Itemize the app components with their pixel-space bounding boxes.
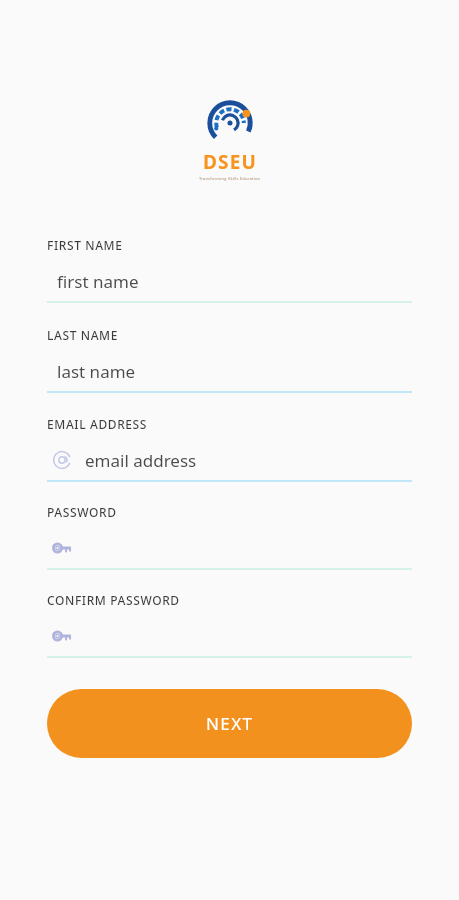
button[interactable]: PASSWORD [47,504,412,570]
button[interactable]: LAST NAME [47,327,412,393]
button[interactable]: EMAIL ADDRESS [47,416,412,482]
button[interactable]: NEXT [47,689,412,758]
staticText: LAST NAME [47,327,119,343]
button[interactable]: FIRST NAME [47,237,412,303]
staticText: DSEU [203,149,258,175]
other: Password [52,537,74,559]
staticText: NEXT [206,712,254,735]
staticText: EMAIL ADDRESS [47,416,148,432]
staticText: FIRST NAME [47,237,123,253]
button[interactable]: CONFIRM PASSWORD [47,592,412,658]
staticText: first name [57,270,139,293]
staticText: Transforming Skills Education [199,176,261,181]
staticText: last name [57,360,136,383]
other: Password [52,625,74,647]
staticText: PASSWORD [47,504,117,520]
staticText: CONFIRM PASSWORD [47,592,180,608]
other: Email [52,450,72,470]
staticText: email address [85,449,197,472]
